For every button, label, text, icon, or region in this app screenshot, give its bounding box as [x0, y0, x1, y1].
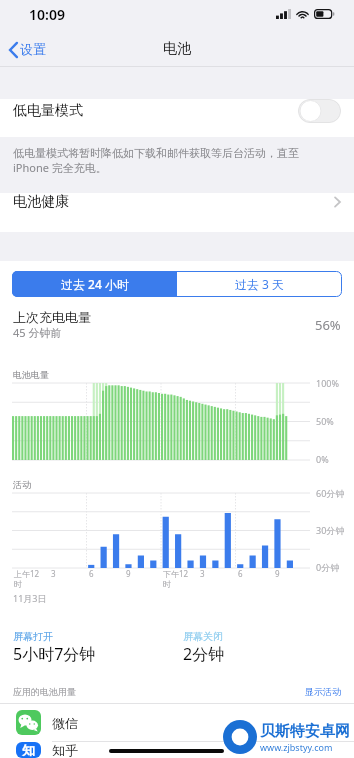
staticText: 过去 3 天 — [235, 276, 285, 292]
button[interactable]: 电池健康 — [0, 193, 354, 211]
button[interactable]: 知 — [0, 742, 354, 758]
button[interactable]: 显示活动 — [305, 686, 341, 697]
staticText: 上午12 时 — [14, 568, 40, 589]
staticText: 6 — [238, 568, 243, 579]
staticText: 知乎 — [52, 742, 78, 758]
staticText: 上次充电电量 — [13, 309, 91, 325]
staticText: 屏幕关闭 — [183, 630, 223, 643]
staticText: 知 — [22, 742, 35, 758]
staticText: 5小时7分钟 — [13, 643, 96, 665]
staticText: 低电量模式将暂时降低如下载和邮件获取等后台活动，直至 iPhone 完全充电。 — [13, 146, 299, 175]
staticText: 0分钟 — [316, 561, 340, 573]
staticText: 6 — [89, 568, 94, 579]
staticText: 10:09 — [29, 5, 65, 24]
staticText: 3 — [51, 568, 56, 579]
button[interactable]: 过去 24 小时 — [12, 271, 177, 297]
staticText: 0% — [316, 453, 329, 465]
staticText: 过去 24 小时 — [61, 276, 129, 292]
staticText: 60分钟 — [316, 487, 345, 499]
staticText: 50% — [316, 415, 334, 427]
staticText: 设置 — [20, 41, 46, 57]
staticText: 低电量模式 — [13, 102, 83, 120]
button[interactable]: 设置 — [0, 39, 54, 61]
staticText: 30分钟 — [316, 524, 345, 536]
staticText: 应用的电池用量 — [13, 686, 76, 697]
button[interactable]: 过去 3 天 — [177, 271, 342, 297]
staticText: 贝斯特安卓网 — [260, 722, 350, 741]
button[interactable]: 微信 — [0, 704, 354, 741]
staticText: 屏幕打开 — [13, 630, 53, 643]
staticText: 11月3日 — [13, 592, 47, 604]
staticText: 微信 — [52, 715, 78, 731]
staticText: 电池电量 — [13, 369, 49, 380]
staticText: 电池健康 — [13, 193, 69, 211]
button[interactable]: 低电量模式 — [0, 99, 354, 123]
staticText: 9 — [126, 568, 131, 579]
staticText: 3 — [200, 568, 205, 579]
button[interactable]: Low power mode toggle — [298, 99, 341, 123]
staticText: 电池 — [163, 40, 191, 58]
staticText: 下午12 时 — [163, 568, 189, 589]
staticText: 45 分钟前 — [13, 325, 62, 340]
staticText: www.zjbstyy.com — [260, 741, 333, 753]
staticText: 9 — [275, 568, 280, 579]
staticText: 活动 — [13, 479, 31, 490]
staticText: 56% — [315, 316, 341, 334]
staticText: 100% — [316, 377, 339, 389]
staticText: 2分钟 — [183, 643, 225, 665]
